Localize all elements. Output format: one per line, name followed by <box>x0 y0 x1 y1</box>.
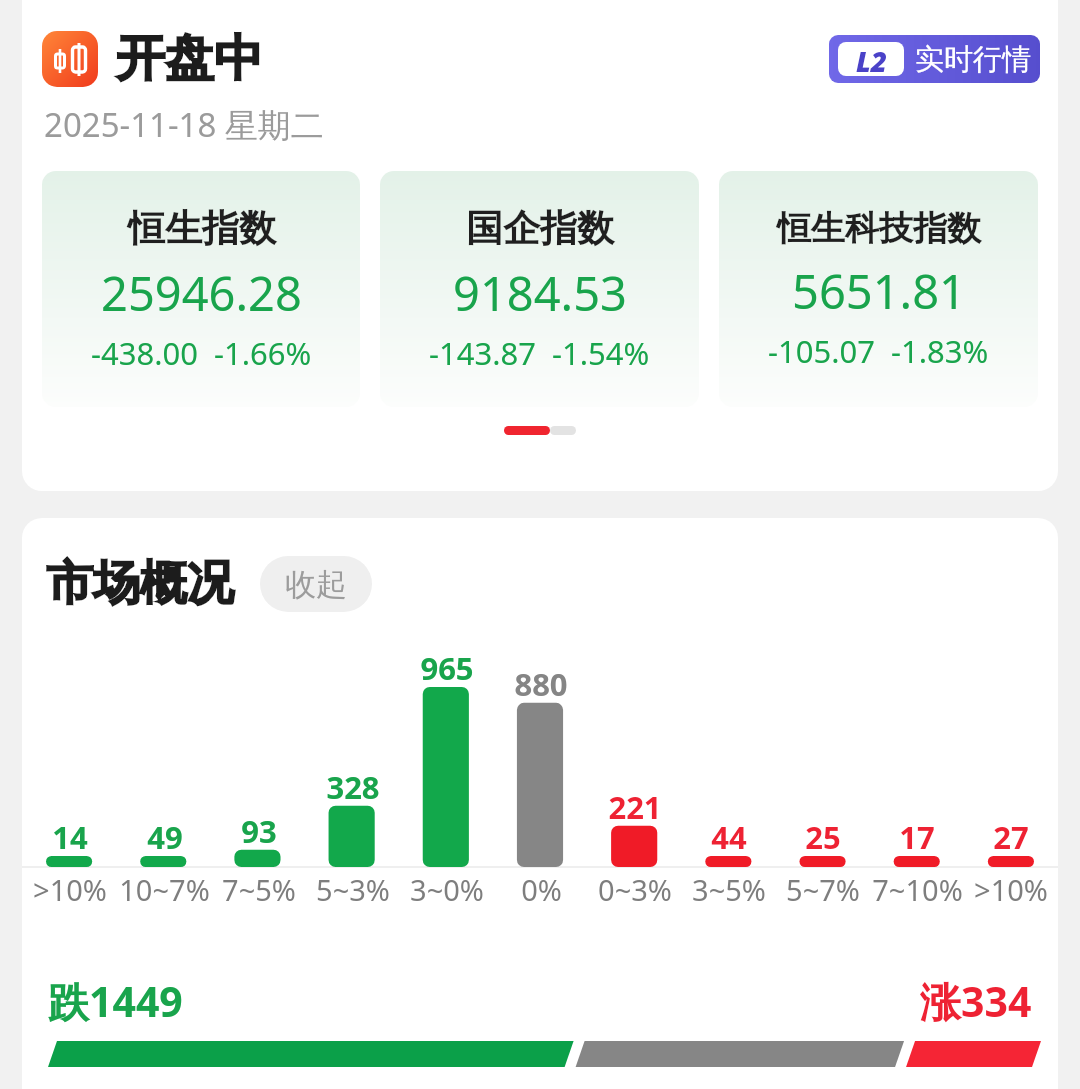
staticText: 恒生指数 <box>128 205 276 252</box>
staticText: 市场概况 <box>46 554 234 613</box>
staticText: 93 <box>241 810 277 852</box>
staticText: 跌1449 <box>48 973 183 1029</box>
staticText: -105.07 -1.83% <box>768 330 989 372</box>
staticText: 965 <box>420 647 474 689</box>
staticText: 27 <box>993 816 1029 858</box>
staticText: 14 <box>52 816 88 858</box>
other: Market status <box>42 31 98 87</box>
staticText: 25946.28 <box>101 261 302 325</box>
staticText: 9184.53 <box>453 261 627 325</box>
button[interactable]: 恒生科技指数 <box>719 171 1038 407</box>
staticText: 涨334 <box>920 973 1032 1029</box>
staticText: 3~5% <box>692 870 766 909</box>
staticText: -143.87 -1.54% <box>429 332 650 374</box>
staticText: -438.00 -1.66% <box>91 332 312 374</box>
staticText: 0~3% <box>598 870 672 909</box>
button[interactable]: 收起 <box>260 556 372 612</box>
staticText: 880 <box>514 663 568 705</box>
staticText: 44 <box>711 816 747 858</box>
staticText: 5~3% <box>316 870 390 909</box>
staticText: 328 <box>326 766 380 808</box>
button[interactable]: 国企指数 <box>380 171 699 407</box>
staticText: 收起 <box>285 565 347 604</box>
staticText: 恒生科技指数 <box>777 207 981 250</box>
staticText: 实时行情 <box>915 41 1031 78</box>
staticText: L2 <box>856 42 887 76</box>
button[interactable] <box>48 1041 1032 1067</box>
staticText: 221 <box>608 786 662 828</box>
staticText: 7~10% <box>872 870 963 909</box>
staticText: 7~5% <box>222 870 296 909</box>
staticText: 国企指数 <box>466 205 614 252</box>
button[interactable]: L2 <box>829 35 1040 83</box>
button[interactable]: 恒生指数 <box>42 171 360 407</box>
staticText: 5651.81 <box>792 259 966 323</box>
staticText: 0% <box>521 870 562 909</box>
staticText: 2025-11-18 星期二 <box>44 102 324 147</box>
staticText: 25 <box>805 816 841 858</box>
staticText: 3~0% <box>410 870 484 909</box>
staticText: >10% <box>33 870 107 909</box>
staticText: 49 <box>147 816 183 858</box>
staticText: 5~7% <box>786 870 860 909</box>
staticText: >10% <box>974 870 1048 909</box>
staticText: 开盘中 <box>116 28 263 90</box>
staticText: 10~7% <box>119 870 210 909</box>
staticText: 17 <box>899 816 935 858</box>
